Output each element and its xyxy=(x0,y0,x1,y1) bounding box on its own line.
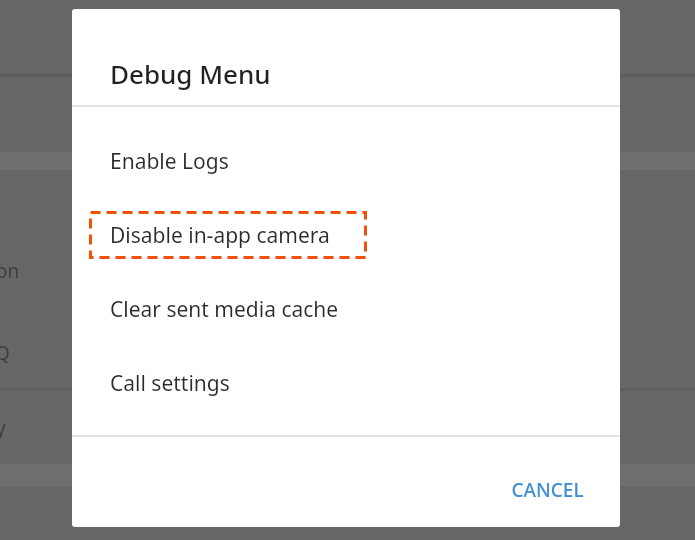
staticText: Q xyxy=(0,340,10,366)
staticText: Enable Logs xyxy=(110,147,229,176)
button[interactable]: Call settings xyxy=(72,359,620,407)
staticText: on xyxy=(0,258,20,284)
button[interactable]: Clear sent media cache xyxy=(72,285,620,333)
staticText: Call settings xyxy=(110,369,230,398)
staticText: y xyxy=(0,415,6,441)
button[interactable]: Enable Logs xyxy=(72,137,620,185)
staticText: Clear sent media cache xyxy=(110,295,339,324)
staticText: CANCEL xyxy=(511,477,584,503)
button[interactable]: Disable in-app camera xyxy=(72,211,620,259)
button[interactable]: CANCEL xyxy=(492,464,602,516)
staticText: Disable in-app camera xyxy=(110,221,330,250)
staticText: Debug Menu xyxy=(110,56,271,91)
